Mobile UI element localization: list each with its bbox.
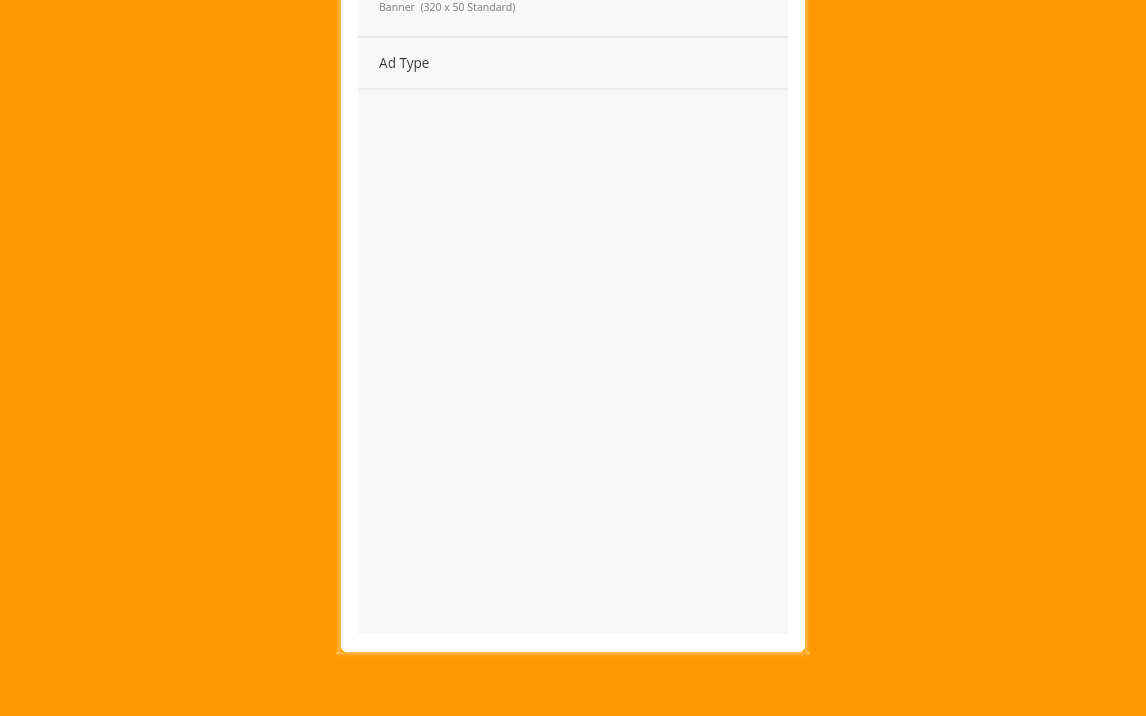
button[interactable]: Ad Size	[358, 0, 788, 36]
button[interactable]: Ad Type	[358, 38, 788, 88]
staticText: Ad Type	[379, 54, 430, 72]
staticText: Banner (320 x 50 Standard)	[379, 0, 516, 14]
